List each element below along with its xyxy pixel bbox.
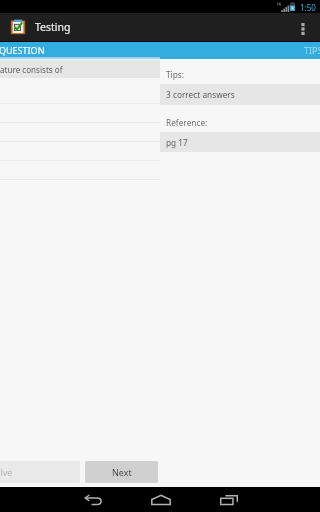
- staticText: Next: [112, 466, 132, 478]
- button[interactable]: pg 17: [160, 132, 320, 152]
- staticText: ature consists of: [0, 64, 63, 75]
- staticText: Testing: [35, 20, 71, 34]
- staticText: Solve: [0, 466, 13, 478]
- button[interactable]: Solve: [0, 461, 80, 483]
- staticText: TIPS: [304, 44, 320, 56]
- button[interactable]: Next: [85, 461, 158, 483]
- button[interactable]: Recent apps: [206, 487, 251, 512]
- staticText: 3 correct answers: [166, 89, 235, 100]
- button[interactable]: Back: [70, 487, 115, 512]
- staticText: QUESTION: [0, 44, 45, 56]
- button[interactable]: More options: [291, 13, 320, 41]
- button[interactable]: Home: [138, 487, 183, 512]
- staticText: Reference:: [166, 117, 208, 128]
- staticText: Tips:: [166, 69, 185, 80]
- staticText: pg 17: [166, 137, 188, 148]
- button[interactable]: 3 correct answers: [160, 84, 320, 105]
- staticText: 1:50: [300, 2, 316, 13]
- button[interactable]: ature consists of: [0, 60, 160, 78]
